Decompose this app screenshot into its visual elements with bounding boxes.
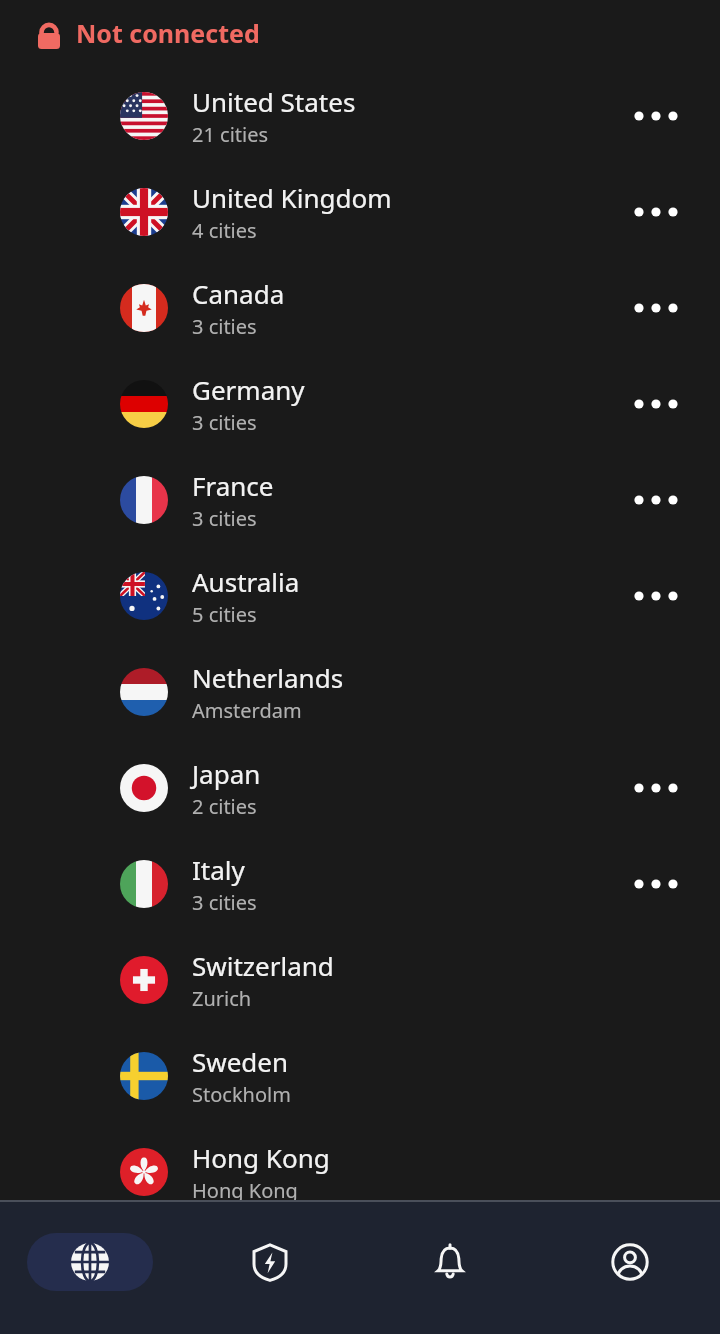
staticText: 3 cities bbox=[192, 505, 257, 532]
button[interactable]: Netherlands bbox=[0, 644, 720, 740]
button[interactable]: More options for Japan bbox=[624, 756, 688, 820]
button[interactable]: Switzerland bbox=[0, 932, 720, 1028]
staticText: Germany bbox=[192, 372, 305, 407]
button[interactable]: Hong Kong bbox=[0, 1124, 720, 1220]
staticText: 3 cities bbox=[192, 409, 257, 436]
button[interactable]: Sweden bbox=[0, 1028, 720, 1124]
button[interactable]: Italy bbox=[0, 836, 720, 932]
button[interactable]: More options for France bbox=[624, 468, 688, 532]
button[interactable]: Account bbox=[593, 1225, 667, 1299]
button[interactable]: Notifications bbox=[413, 1225, 487, 1299]
button[interactable]: More options for Canada bbox=[624, 276, 688, 340]
staticText: France bbox=[192, 468, 274, 503]
staticText: United States bbox=[192, 84, 356, 119]
button[interactable]: Locations bbox=[27, 1233, 153, 1291]
staticText: Canada bbox=[192, 276, 285, 311]
staticText: Switzerland bbox=[192, 948, 334, 983]
staticText: 4 cities bbox=[192, 217, 257, 244]
button[interactable]: More options for Australia bbox=[624, 564, 688, 628]
button[interactable]: More options for United States bbox=[624, 84, 688, 148]
button[interactable]: Australia bbox=[0, 548, 720, 644]
staticText: 3 cities bbox=[192, 313, 257, 340]
staticText: Japan bbox=[192, 756, 261, 791]
staticText: 21 cities bbox=[192, 121, 269, 148]
staticText: Hong Kong bbox=[192, 1140, 330, 1175]
button[interactable]: United States bbox=[0, 68, 720, 164]
staticText: Amsterdam bbox=[192, 697, 302, 724]
button[interactable]: More options for Germany bbox=[624, 372, 688, 436]
staticText: 3 cities bbox=[192, 889, 257, 916]
staticText: 2 cities bbox=[192, 793, 257, 820]
button[interactable]: Japan bbox=[0, 740, 720, 836]
button[interactable]: More options for United Kingdom bbox=[624, 180, 688, 244]
staticText: 5 cities bbox=[192, 601, 257, 628]
button[interactable]: France bbox=[0, 452, 720, 548]
staticText: Italy bbox=[192, 852, 245, 887]
button[interactable]: Protection bbox=[233, 1225, 307, 1299]
staticText: Not connected bbox=[76, 16, 260, 50]
button[interactable]: Canada bbox=[0, 260, 720, 356]
staticText: Hong Kong bbox=[192, 1177, 298, 1204]
staticText: Zurich bbox=[192, 985, 252, 1012]
staticText: Netherlands bbox=[192, 660, 344, 695]
staticText: United Kingdom bbox=[192, 180, 392, 215]
button[interactable]: United Kingdom bbox=[0, 164, 720, 260]
button[interactable]: More options for Italy bbox=[624, 852, 688, 916]
staticText: Stockholm bbox=[192, 1081, 291, 1108]
staticText: Australia bbox=[192, 564, 300, 599]
button[interactable]: Germany bbox=[0, 356, 720, 452]
staticText: Sweden bbox=[192, 1044, 289, 1079]
